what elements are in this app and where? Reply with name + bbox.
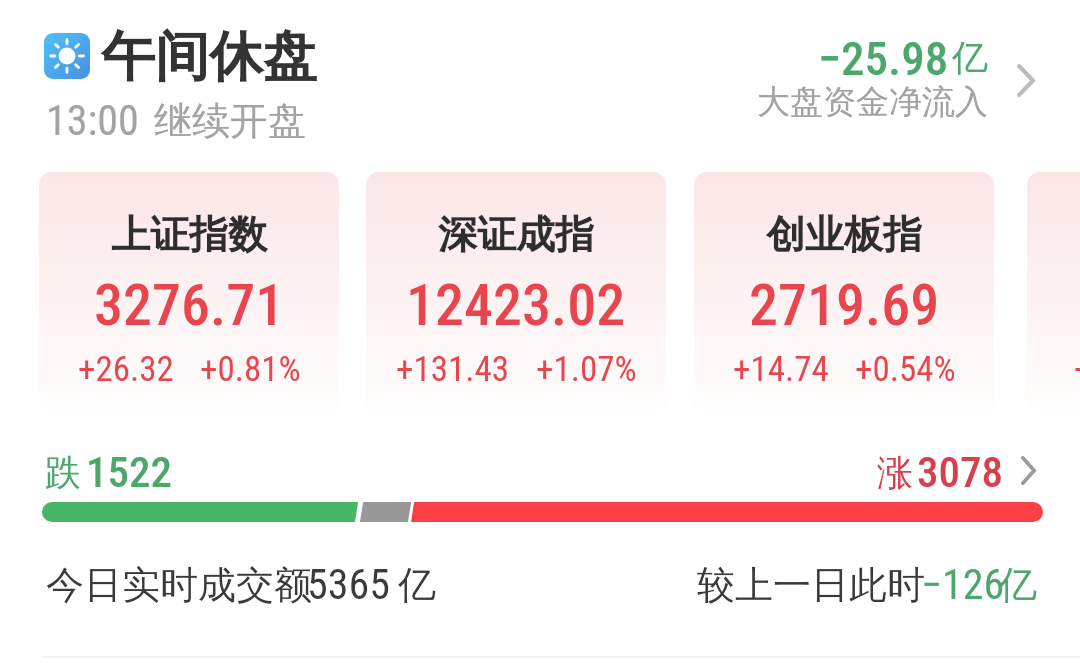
button[interactable]: −25.98	[700, 0, 1080, 140]
staticText: +131.43	[396, 349, 510, 390]
staticText: +14.74	[733, 349, 829, 390]
staticText: −25.98	[818, 31, 949, 86]
staticText: 大盘资金净流入	[757, 81, 988, 123]
staticText: 午间休盘	[101, 23, 317, 91]
button[interactable]: 深证成指	[366, 172, 666, 420]
staticText: 涨	[877, 450, 913, 495]
button[interactable]: 上证指数	[39, 172, 339, 420]
staticText: −126	[921, 560, 1005, 609]
staticText: 12423.02	[406, 271, 626, 339]
staticText: +26.32	[78, 349, 174, 390]
staticText: 继续开盘	[154, 97, 306, 145]
staticText: 亿	[952, 35, 988, 80]
staticText: 3276.71	[94, 271, 285, 339]
other: 查看大盘资金净流入	[1017, 64, 1035, 97]
staticText: 1522	[86, 447, 172, 497]
staticText: 2719.69	[749, 271, 940, 339]
staticText: +0.81%	[200, 349, 301, 390]
button[interactable]: 跌	[0, 440, 1080, 500]
staticText: 深证成指	[438, 210, 594, 259]
staticText: 较上一日此时	[697, 561, 925, 609]
staticText: 跌	[45, 450, 81, 495]
staticText: 今日实时成交额	[46, 561, 312, 609]
staticText: 创业板指	[766, 210, 922, 259]
staticText: 亿	[398, 561, 436, 609]
staticText: +5.31	[1074, 349, 1080, 390]
staticText: 3078	[917, 447, 1003, 497]
staticText: 5365	[307, 560, 390, 609]
staticText: +1.07%	[536, 349, 637, 390]
staticText: +0.54%	[855, 349, 956, 390]
button[interactable]: 创业板指	[694, 172, 994, 420]
staticText: 上证指数	[111, 210, 267, 259]
staticText: 亿	[999, 561, 1037, 609]
staticText: 13:00	[46, 96, 139, 145]
button[interactable]: 科创50指	[1027, 172, 1080, 420]
